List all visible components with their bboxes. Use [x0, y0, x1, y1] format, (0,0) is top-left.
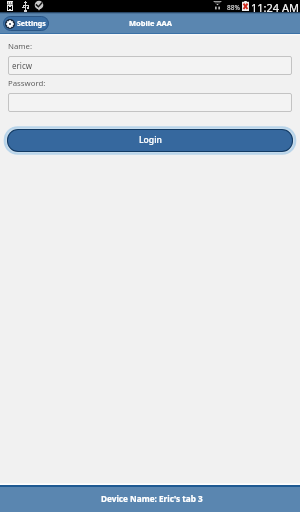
staticText: Settings — [17, 19, 46, 29]
staticText: 11:24 AM — [251, 0, 299, 13]
button[interactable]: Login — [8, 130, 292, 151]
staticText: 88% — [227, 3, 240, 12]
button[interactable]: Settings — [3, 16, 49, 31]
other: Developer options — [7, 1, 13, 11]
other: Battery — [242, 1, 249, 11]
button[interactable] — [8, 93, 292, 112]
other: Wi-Fi — [213, 0, 222, 10]
staticText: Name: — [8, 41, 33, 52]
staticText: Login — [139, 134, 162, 146]
other: USB connected — [22, 1, 30, 12]
staticText: Password: — [8, 78, 46, 89]
other: Verified — [34, 0, 44, 11]
button[interactable]: Device Name: Eric's tab 3 — [0, 487, 300, 512]
staticText: ericw — [12, 60, 33, 71]
staticText: Device Name: Eric's tab 3 — [101, 493, 203, 504]
button[interactable]: ericw — [8, 56, 292, 75]
staticText: Mobile AAA — [129, 18, 172, 28]
